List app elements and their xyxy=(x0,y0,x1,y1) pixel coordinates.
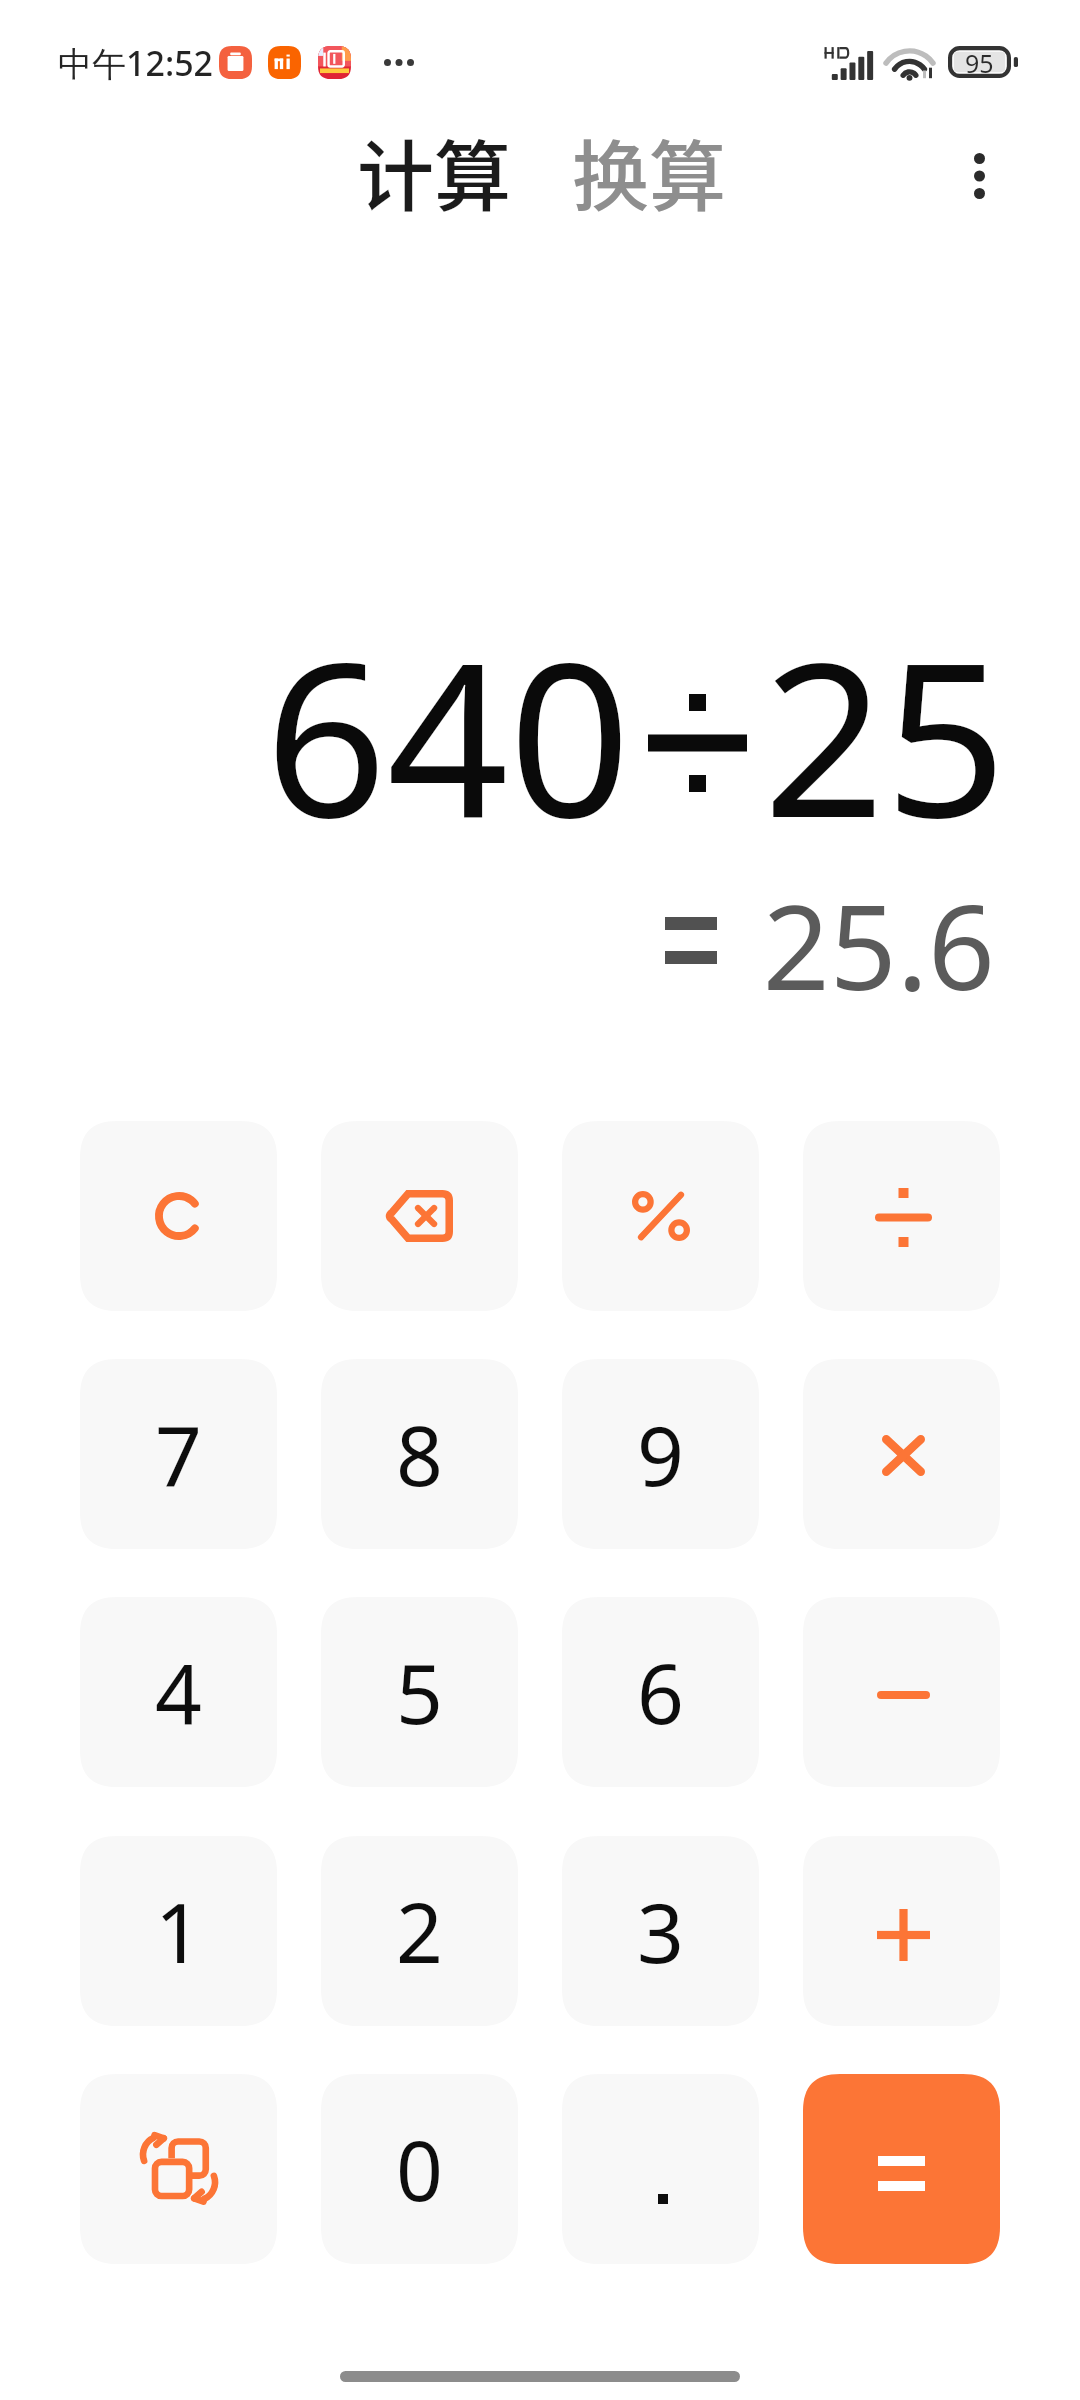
button[interactable]: 3 xyxy=(562,1836,759,2026)
staticText: 2 xyxy=(396,1875,443,1987)
button[interactable]: 9 xyxy=(562,1359,759,1549)
button[interactable]: Unit converter xyxy=(80,2074,277,2264)
staticText: 25 xyxy=(763,589,1007,879)
button[interactable]: 0 xyxy=(321,2074,518,2264)
staticText: 8 xyxy=(396,1398,443,1510)
button[interactable]: Percent xyxy=(562,1121,759,1311)
button[interactable]: Clear xyxy=(80,1121,277,1311)
staticText: 6 xyxy=(637,1636,684,1748)
staticText: 9 xyxy=(637,1398,684,1510)
staticText: 4 xyxy=(155,1636,202,1748)
staticText: 0 xyxy=(396,2113,443,2225)
staticText: 5 xyxy=(396,1636,443,1748)
button[interactable]: 4 xyxy=(80,1597,277,1787)
button[interactable]: Backspace xyxy=(321,1121,518,1311)
staticText: 1 xyxy=(155,1875,202,1987)
button[interactable]: 1 xyxy=(80,1836,277,2026)
button[interactable]: 换算 xyxy=(560,108,738,235)
staticText: 换算 xyxy=(572,116,726,227)
button[interactable]: Equals xyxy=(803,2074,1000,2264)
button[interactable]: Minus xyxy=(803,1597,1000,1787)
staticText: 3 xyxy=(637,1875,684,1987)
button[interactable]: 5 xyxy=(321,1597,518,1787)
button[interactable] xyxy=(562,2074,759,2264)
staticText: 25.6 xyxy=(762,865,995,1024)
button[interactable]: 计算 xyxy=(345,108,523,235)
staticText: 7 xyxy=(155,1398,202,1510)
staticText: 640 xyxy=(265,589,631,879)
staticText: 95 xyxy=(965,46,994,78)
button[interactable]: More options xyxy=(929,126,1029,226)
button[interactable]: Plus xyxy=(803,1836,1000,2026)
button[interactable]: 2 xyxy=(321,1836,518,2026)
button[interactable]: 7 xyxy=(80,1359,277,1549)
button[interactable]: 6 xyxy=(562,1597,759,1787)
button[interactable]: Divide xyxy=(803,1121,1000,1311)
button[interactable]: Multiply xyxy=(803,1359,1000,1549)
button[interactable]: 8 xyxy=(321,1359,518,1549)
staticText: 计算 xyxy=(357,116,511,227)
staticText: 中午12:52 xyxy=(58,40,214,86)
